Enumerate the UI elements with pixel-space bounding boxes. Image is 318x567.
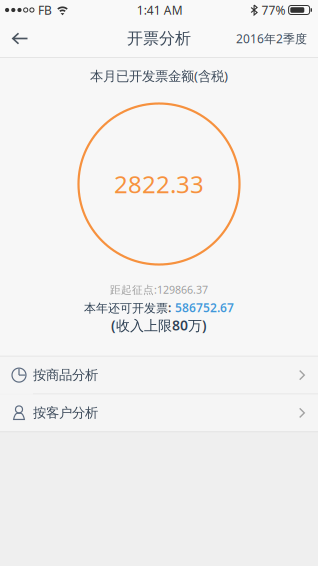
staticText: FB bbox=[38, 2, 52, 18]
staticText: 586752.67 bbox=[175, 300, 234, 316]
staticText: (收入上限80万) bbox=[111, 316, 207, 335]
staticText: 距起征点:129866.37 bbox=[110, 282, 208, 297]
staticText: 1:41 AM bbox=[137, 2, 183, 18]
staticText: 2822.33 bbox=[114, 168, 204, 200]
staticText: 本年还可开发票: bbox=[84, 300, 171, 316]
staticText: 按商品分析 bbox=[33, 367, 98, 383]
button[interactable]: Back bbox=[0, 21, 28, 56]
button[interactable]: 按商品分析 bbox=[0, 357, 318, 394]
staticText: 本月已开发票金额(含税) bbox=[90, 67, 228, 84]
staticText: 按客户分析 bbox=[33, 405, 98, 421]
staticText: 2016年2季度 bbox=[236, 30, 307, 46]
staticText: 开票分析 bbox=[127, 29, 191, 48]
staticText: 77% bbox=[262, 2, 286, 18]
button[interactable]: 2016年2季度 bbox=[236, 30, 318, 46]
button[interactable]: 按客户分析 bbox=[0, 394, 318, 431]
